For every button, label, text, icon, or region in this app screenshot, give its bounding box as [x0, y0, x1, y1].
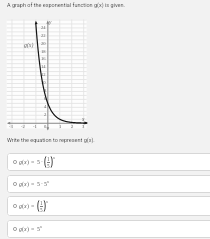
staticText: -3 [9, 124, 13, 129]
staticText: 5 [47, 163, 50, 168]
staticText: x [46, 199, 48, 204]
staticText: 2 [71, 124, 74, 129]
staticText: 1 [47, 156, 50, 162]
staticText: x [24, 159, 27, 166]
staticText: x [40, 224, 42, 229]
staticText: x [24, 181, 27, 188]
staticText: Write the equation to represent g(x). [7, 137, 95, 143]
staticText: g(x) [24, 42, 34, 48]
staticText: 22 [41, 33, 46, 38]
staticText: · [41, 181, 43, 188]
staticText: ) [27, 203, 29, 210]
staticText: g [19, 203, 22, 210]
staticText: 3 [82, 124, 85, 129]
staticText: 12 [41, 72, 46, 77]
staticText: -2 [21, 124, 25, 129]
staticText: x [47, 179, 49, 184]
staticText: g [19, 159, 22, 166]
staticText: 6 [44, 96, 47, 101]
staticText: = [31, 203, 35, 210]
staticText: x [53, 155, 55, 160]
button[interactable]: Answer option 4 [7, 220, 210, 238]
staticText: 1 [59, 124, 62, 129]
button[interactable]: Answer option 3 [7, 196, 210, 216]
staticText: 18 [41, 49, 46, 54]
staticText: 5 [40, 207, 43, 212]
staticText: · [41, 159, 43, 166]
staticText: 5 [44, 181, 47, 188]
staticText: x [24, 226, 27, 233]
staticText: 10 [41, 80, 46, 85]
staticText: ) [27, 181, 29, 188]
staticText: = [31, 226, 35, 233]
staticText: 4 [44, 104, 47, 109]
button[interactable]: Answer option 1 [7, 153, 210, 171]
staticText: ) [27, 159, 29, 166]
staticText: 2 [44, 112, 47, 117]
staticText: = [31, 159, 35, 166]
staticText: ( [22, 203, 24, 210]
staticText: x [24, 203, 27, 210]
staticText: 14 [41, 64, 46, 69]
staticText: -1 [33, 124, 37, 129]
staticText: 5 [37, 181, 40, 188]
staticText: = [31, 181, 35, 188]
staticText: 1 [40, 200, 43, 206]
staticText: ( [22, 226, 24, 233]
staticText: 8 [44, 88, 47, 93]
staticText: 24 [41, 25, 46, 30]
staticText: 20 [41, 41, 46, 46]
staticText: 16 [41, 56, 46, 61]
staticText: 5 [37, 159, 40, 166]
staticText: A graph of the exponential function g(x)… [7, 2, 125, 8]
staticText: ) [27, 226, 29, 233]
staticText: 5 [37, 226, 40, 233]
staticText: ( [22, 159, 24, 166]
staticText: g [19, 226, 22, 233]
staticText: g [19, 181, 22, 188]
button[interactable]: Answer option 2 [7, 175, 210, 193]
staticText: y [49, 19, 52, 25]
staticText: x [82, 116, 85, 122]
staticText: 0 [44, 124, 47, 129]
staticText: ( [22, 181, 24, 188]
